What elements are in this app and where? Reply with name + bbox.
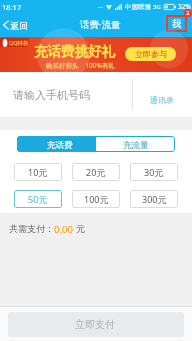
button[interactable]: 100元 — [72, 190, 120, 208]
button[interactable]: 10元 — [14, 163, 62, 181]
button[interactable]: 50元 — [14, 190, 62, 208]
button[interactable]: 30元 — [130, 163, 178, 181]
staticText: 300元 — [142, 193, 167, 205]
staticText: ··· — [98, 3, 103, 11]
staticText: 10元 — [28, 166, 48, 178]
staticText: 请输入手机号码 — [13, 88, 90, 102]
staticText: 共需支付： — [9, 223, 54, 234]
staticText: 元 — [76, 223, 85, 234]
staticText: 30元 — [144, 166, 164, 178]
button[interactable]: 充话费 — [17, 136, 96, 152]
staticText: 充话费挑好礼 — [34, 43, 115, 60]
staticText: 0.00 — [54, 223, 73, 236]
staticText: 返回 — [10, 20, 28, 31]
staticText: QQ特权 — [9, 39, 29, 47]
staticText: 立即参与 — [135, 49, 167, 59]
staticText: 通讯录 — [150, 95, 174, 105]
staticText: 3G — [153, 3, 161, 11]
button[interactable]: QQ特权 — [0, 37, 192, 72]
staticText: 50元 — [28, 193, 48, 205]
button[interactable]: 300元 — [130, 190, 178, 208]
staticText: 话费·流量 — [80, 18, 121, 31]
staticText: 32% — [178, 2, 191, 11]
staticText: 中国联通 — [125, 3, 151, 11]
staticText: 20元 — [86, 166, 106, 178]
staticText: 充流量 — [123, 140, 149, 151]
button[interactable]: 充流量 — [96, 136, 175, 152]
staticText: 立即支付 — [75, 318, 115, 331]
button[interactable]: 返回 — [0, 13, 34, 37]
staticText: 充话费 — [47, 140, 73, 151]
staticText: 18:17 — [2, 2, 22, 12]
button[interactable]: 立即支付 — [8, 312, 184, 337]
button[interactable]: 20元 — [72, 163, 120, 181]
staticText: 2 — [186, 9, 190, 17]
staticText: 我 — [172, 18, 182, 30]
staticText: 100元 — [84, 193, 109, 205]
button[interactable]: 我 — [166, 15, 187, 32]
staticText: 购买好彩头 100%有礼 — [46, 61, 115, 70]
button[interactable]: 立即参与 — [125, 47, 176, 61]
button[interactable]: 通讯录 — [132, 72, 192, 117]
